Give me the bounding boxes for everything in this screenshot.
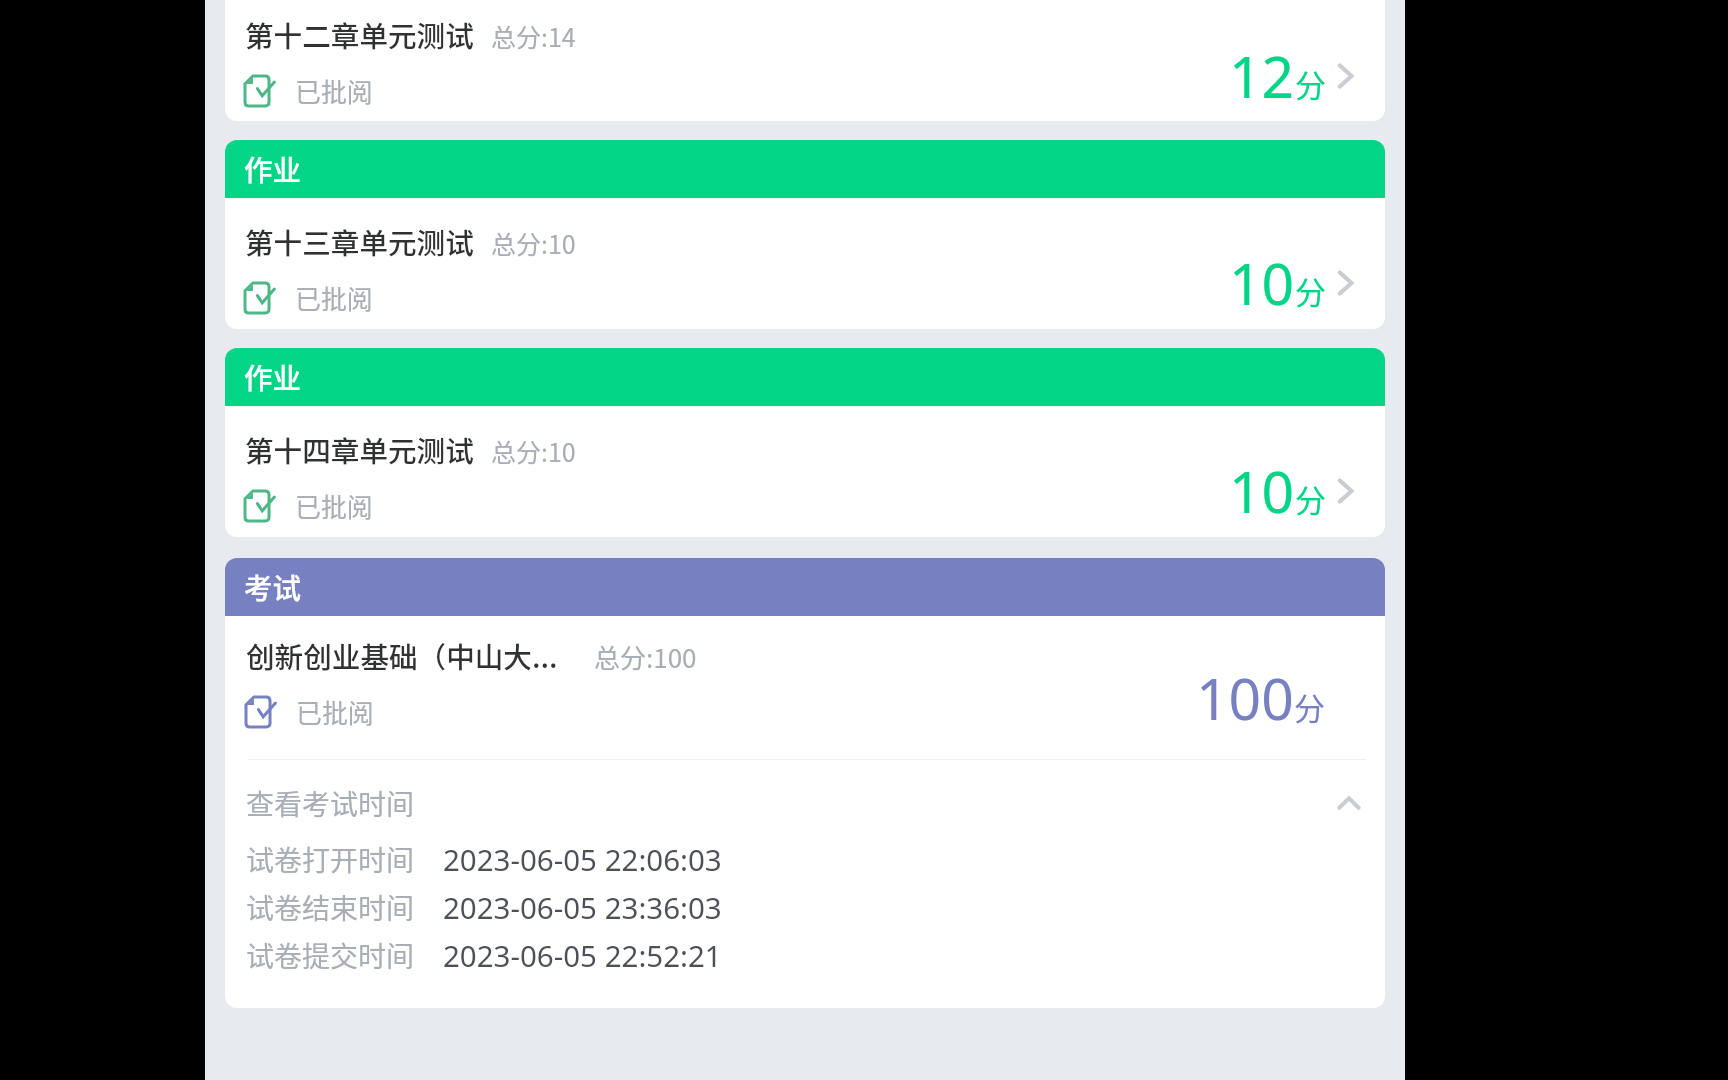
staticText: 作业 — [244, 356, 302, 397]
staticText: 查看考试时间 — [246, 783, 415, 824]
staticText: 已批阅 — [295, 72, 373, 110]
staticText: 分 — [1295, 61, 1326, 106]
button[interactable]: 作业 — [225, 140, 1385, 198]
staticText: 第十二章单元测试 — [245, 14, 474, 55]
staticText: 试卷提交时间 — [246, 935, 415, 976]
staticText: 100 — [1196, 659, 1294, 737]
staticText: 作业 — [244, 148, 302, 189]
staticText: 总分:10 — [491, 433, 576, 469]
button[interactable]: 第十三章单元测试 — [225, 198, 1385, 329]
staticText: 分 — [1295, 268, 1326, 313]
staticText: 10 — [1229, 244, 1295, 322]
button[interactable]: 创新创业基础（中山大... — [225, 616, 1385, 759]
staticText: 第十三章单元测试 — [245, 221, 474, 262]
staticText: 第十四章单元测试 — [245, 429, 474, 470]
staticText: 总分:14 — [491, 18, 576, 54]
button[interactable]: 考试 — [225, 558, 1385, 616]
button[interactable]: 查看考试时间 — [225, 760, 1385, 846]
other: 查看详情 — [1338, 64, 1353, 88]
staticText: 分 — [1295, 476, 1326, 521]
staticText: 10 — [1229, 452, 1295, 530]
staticText: 已批阅 — [295, 279, 373, 317]
staticText: 试卷打开时间 — [246, 839, 415, 880]
other: 查看详情 — [1338, 271, 1353, 295]
staticText: 12 — [1229, 37, 1295, 115]
staticText: 试卷结束时间 — [246, 887, 415, 928]
staticText: 分 — [1294, 684, 1325, 729]
staticText: 创新创业基础（中山大... — [246, 635, 558, 676]
staticText: 总分:100 — [594, 638, 697, 676]
other: 查看详情 — [1338, 479, 1353, 503]
button[interactable]: 第十四章单元测试 — [225, 406, 1385, 537]
staticText: 2023-06-05 22:06:03 — [443, 839, 722, 879]
staticText: 已批阅 — [295, 487, 373, 525]
staticText: 总分:10 — [491, 225, 576, 261]
button[interactable]: 作业 — [225, 348, 1385, 406]
other: 收起考试时间 — [1338, 796, 1360, 810]
staticText: 考试 — [244, 566, 302, 607]
staticText: 2023-06-05 22:52:21 — [443, 935, 722, 975]
staticText: 2023-06-05 23:36:03 — [443, 887, 722, 927]
staticText: 已批阅 — [296, 693, 374, 731]
button[interactable]: 第十二章单元测试 — [225, 0, 1385, 121]
